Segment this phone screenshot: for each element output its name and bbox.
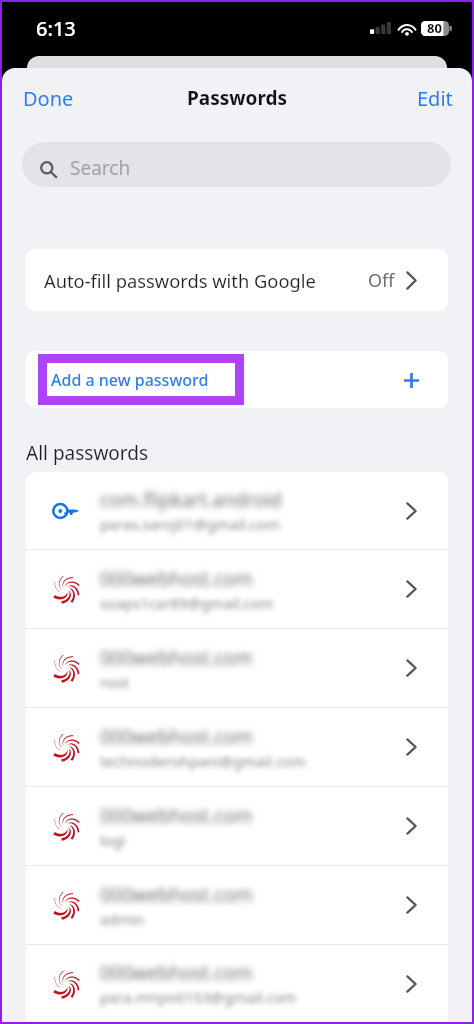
button[interactable]: 000webhost.com [26,945,448,1022]
staticText: All passwords [26,440,149,466]
staticText: 000webhost.com [100,566,253,592]
other: Open details [406,580,417,598]
button[interactable]: 000webhost.com [26,708,448,786]
staticText: 000webhost.com [100,882,253,908]
staticText: 80 [427,19,442,37]
staticText: technoderohpani@gmail.com [100,751,306,771]
other: Open details [406,502,417,520]
button[interactable]: Search [22,142,451,187]
staticText: Auto-fill passwords with Google [44,268,316,293]
button[interactable]: 000webhost.com [26,787,448,865]
button[interactable]: 000webhost.com [26,629,448,707]
staticText: 000webhost.com [100,724,253,750]
staticText: soaps1car89@gmail.com [100,593,274,613]
button[interactable]: Edit [398,78,472,125]
staticText: 000webhost.com [100,803,253,829]
other: Open details [406,738,417,756]
other: Add a new password [404,373,419,388]
staticText: admin [100,909,145,929]
staticText: Passwords [187,85,288,111]
staticText: Off [368,268,395,293]
staticText: 6:13 [36,15,76,42]
staticText: para.mnpo0103@gmail.com [100,987,297,1007]
staticText: paras.saroj01@gmail.com [100,514,280,534]
staticText: Add a new password [51,369,209,391]
other: Open details [406,975,417,993]
staticText: Search [70,155,131,181]
button[interactable]: Done [2,78,95,125]
button[interactable]: com.flipkart.android [26,472,448,549]
button[interactable]: Auto-fill passwords with Google [26,249,448,311]
button[interactable]: 000webhost.com [26,866,448,944]
button[interactable]: 000webhost.com [26,550,448,628]
staticText: root [100,672,130,692]
staticText: logi [100,830,126,850]
staticText: com.flipkart.android [100,487,282,513]
staticText: 000webhost.com [100,960,253,986]
other: Open details [406,271,417,290]
other: Open details [406,659,417,677]
staticText: 000webhost.com [100,645,253,671]
button[interactable]: Add a new password [26,351,448,408]
other: Open details [406,817,417,835]
other: Open details [406,896,417,914]
